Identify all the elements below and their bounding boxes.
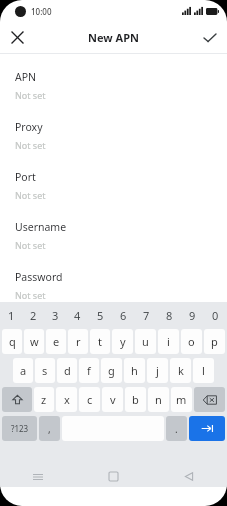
button[interactable]: h: [124, 358, 145, 383]
staticText: 2: [30, 308, 37, 323]
button[interactable]: 5: [89, 307, 112, 323]
button[interactable]: 2: [22, 307, 44, 323]
staticText: g: [108, 363, 115, 378]
staticText: APN: [15, 70, 37, 84]
button[interactable]: m: [171, 387, 192, 412]
button[interactable]: y: [112, 329, 133, 354]
button[interactable]: u: [135, 329, 156, 354]
button[interactable]: d: [57, 358, 77, 383]
staticText: Proxy: [15, 120, 43, 134]
staticText: y: [120, 334, 126, 349]
button[interactable]: e: [46, 329, 66, 354]
button[interactable]: 0: [204, 307, 227, 323]
staticText: u: [142, 334, 149, 349]
button[interactable]: c: [79, 387, 100, 412]
staticText: .: [175, 422, 178, 436]
staticText: New APN: [88, 30, 139, 45]
staticText: ,: [48, 422, 51, 436]
staticText: Username: [15, 220, 67, 234]
button[interactable]: 7: [135, 307, 158, 323]
button[interactable]: q: [2, 329, 22, 354]
staticText: z: [41, 392, 47, 407]
button[interactable]: 4: [66, 307, 89, 323]
button[interactable]: k: [170, 358, 191, 383]
button[interactable]: Proxy: [0, 113, 227, 163]
button[interactable]: Backspace: [194, 387, 225, 412]
staticText: b: [132, 392, 139, 407]
staticText: 8: [166, 308, 173, 323]
staticText: 0: [212, 308, 219, 323]
staticText: a: [20, 363, 27, 378]
staticText: Not set: [15, 239, 46, 251]
button[interactable]: x: [56, 387, 77, 412]
button[interactable]: z: [34, 387, 54, 412]
button[interactable]: g: [101, 358, 122, 383]
button[interactable]: 9: [181, 307, 204, 323]
button[interactable]: v: [102, 387, 123, 412]
staticText: Not set: [15, 89, 46, 101]
button[interactable]: 8: [158, 307, 181, 323]
button[interactable]: i: [158, 329, 179, 354]
staticText: s: [42, 363, 48, 378]
button[interactable]: s: [35, 358, 55, 383]
staticText: h: [131, 363, 138, 378]
staticText: i: [167, 334, 170, 349]
staticText: e: [53, 334, 60, 349]
button[interactable]: t: [90, 329, 110, 354]
staticText: x: [64, 392, 70, 407]
staticText: q: [9, 334, 16, 349]
staticText: 3: [52, 308, 59, 323]
button[interactable]: a: [13, 358, 33, 383]
staticText: j: [156, 363, 159, 378]
staticText: m: [176, 392, 187, 407]
button[interactable]: Port: [0, 163, 227, 213]
staticText: v: [110, 392, 116, 407]
button[interactable]: l: [193, 358, 214, 383]
button[interactable]: w: [24, 329, 44, 354]
button[interactable]: b: [125, 387, 146, 412]
button[interactable]: o: [181, 329, 202, 354]
staticText: 5: [97, 308, 104, 323]
button[interactable]: ?123: [2, 416, 37, 441]
button[interactable]: Back: [151, 466, 227, 487]
button[interactable]: j: [147, 358, 168, 383]
button[interactable]: .: [166, 416, 187, 441]
staticText: Port: [15, 170, 36, 184]
staticText: l: [202, 363, 205, 378]
button[interactable]: ,: [39, 416, 60, 441]
button[interactable]: Home: [75, 466, 151, 487]
button[interactable]: 6: [112, 307, 135, 323]
staticText: t: [98, 334, 102, 349]
button[interactable]: Save: [193, 22, 227, 53]
button[interactable]: Username: [0, 213, 227, 263]
button[interactable]: 3: [44, 307, 66, 323]
staticText: Not set: [15, 189, 46, 201]
button[interactable]: n: [148, 387, 169, 412]
staticText: Password: [15, 270, 63, 284]
staticText: k: [178, 363, 184, 378]
button[interactable]: Close: [0, 22, 34, 53]
staticText: 4: [74, 308, 81, 323]
staticText: 7: [143, 308, 150, 323]
button[interactable]: r: [68, 329, 88, 354]
staticText: p: [211, 334, 218, 349]
button[interactable]: 1: [0, 307, 22, 323]
staticText: r: [76, 334, 81, 349]
button[interactable]: Recents: [0, 466, 75, 487]
button[interactable]: Next: [189, 416, 225, 441]
staticText: 1: [8, 308, 15, 323]
staticText: w: [30, 334, 39, 349]
staticText: Not set: [15, 139, 46, 151]
button[interactable]: Shift: [2, 387, 32, 412]
staticText: f: [87, 363, 91, 378]
staticText: 9: [189, 308, 196, 323]
staticText: ?123: [11, 423, 29, 434]
button[interactable]: Password: [0, 263, 227, 302]
staticText: c: [87, 392, 93, 407]
button[interactable]: f: [79, 358, 99, 383]
staticText: Not set: [15, 289, 46, 301]
staticText: o: [188, 334, 195, 349]
button[interactable]: p: [204, 329, 225, 354]
button[interactable]: APN: [0, 63, 227, 113]
